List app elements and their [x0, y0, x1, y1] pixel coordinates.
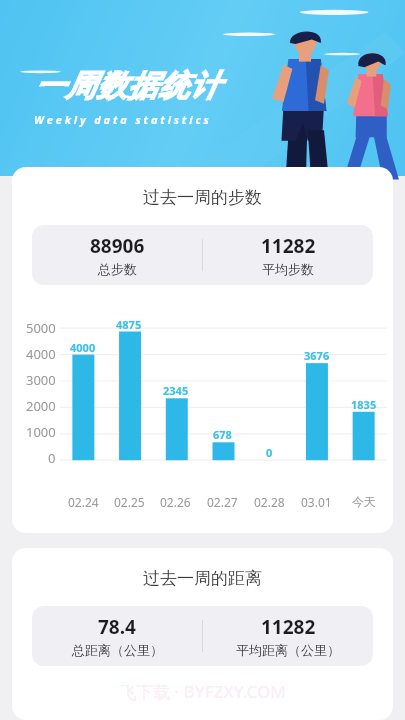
staticText: 3676: [304, 348, 330, 363]
staticText: 11282: [261, 233, 316, 259]
staticText: 02.25: [114, 494, 145, 510]
staticText: 4000: [70, 340, 96, 355]
staticText: 一周数据统计: [34, 67, 220, 105]
staticText: 过去一周的距离: [12, 568, 393, 589]
staticText: 飞下载 · BYFZXY.COM: [12, 680, 393, 703]
staticText: 1835: [351, 397, 377, 412]
staticText: 02.26: [160, 494, 191, 510]
staticText: 1000: [26, 423, 56, 441]
staticText: 平均距离（公里）: [236, 642, 340, 658]
staticText: 0: [266, 445, 273, 460]
button[interactable]: 过去一周的距离: [12, 548, 393, 720]
button[interactable]: 过去一周的步数: [12, 167, 393, 533]
staticText: 4000: [26, 345, 56, 363]
staticText: 02.27: [207, 494, 238, 510]
staticText: 总步数: [98, 261, 137, 277]
staticText: 4875: [116, 317, 142, 332]
staticText: 0: [48, 449, 56, 467]
staticText: 总距离（公里）: [72, 642, 163, 658]
staticText: 03.01: [301, 494, 332, 510]
staticText: 11282: [261, 614, 316, 640]
staticText: 678: [213, 427, 232, 442]
staticText: 5000: [26, 319, 56, 337]
staticText: 2000: [26, 397, 56, 415]
staticText: 2345: [163, 383, 189, 398]
staticText: 78.4: [98, 614, 136, 640]
staticText: 02.28: [254, 494, 285, 510]
staticText: 平均步数: [262, 261, 314, 277]
staticText: 3000: [26, 371, 56, 389]
staticText: 今天: [352, 494, 376, 509]
staticText: W e e k l y d a t a s t a t i s t i c s: [34, 112, 209, 127]
staticText: 02.24: [68, 494, 99, 510]
staticText: 过去一周的步数: [12, 187, 393, 208]
staticText: 88906: [90, 233, 145, 259]
